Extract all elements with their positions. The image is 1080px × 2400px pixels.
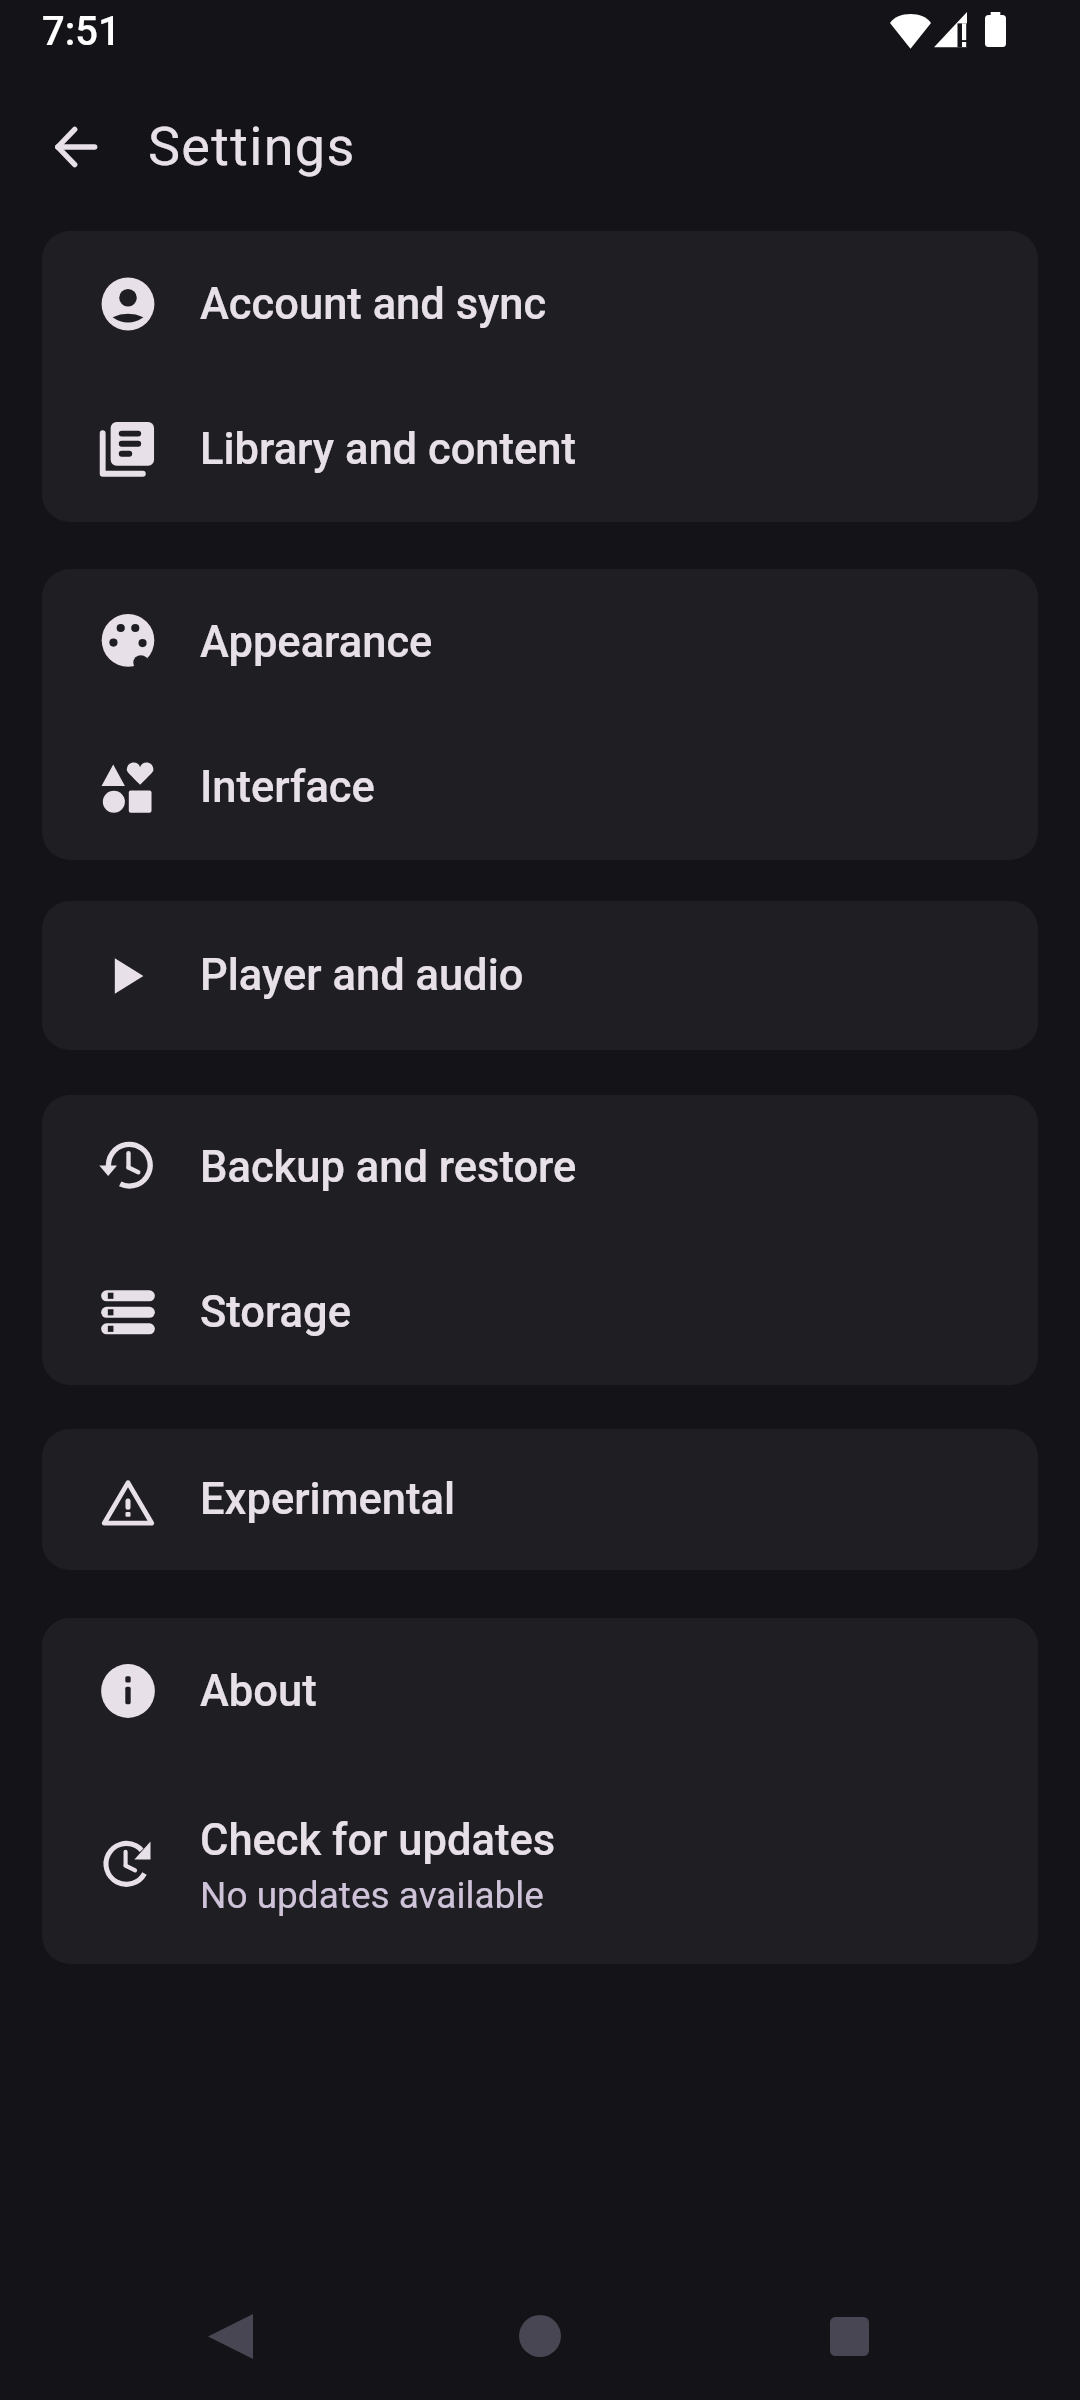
button[interactable]: Check for updates xyxy=(42,1764,1038,1964)
button[interactable]: Account and sync xyxy=(42,231,1038,377)
staticText: Backup and restore xyxy=(200,1142,577,1193)
staticText: Library and content xyxy=(200,424,577,475)
staticText: Appearance xyxy=(200,617,433,668)
staticText: 7:51 xyxy=(42,8,121,55)
staticText: Storage xyxy=(200,1287,352,1338)
button[interactable]: Player and audio xyxy=(42,901,1038,1050)
button[interactable]: Recents xyxy=(803,2290,895,2382)
button[interactable]: Back xyxy=(28,99,124,195)
button[interactable]: About xyxy=(42,1618,1038,1764)
button[interactable]: Back xyxy=(184,2290,276,2382)
staticText: Interface xyxy=(200,762,375,813)
staticText: Settings xyxy=(148,115,356,178)
staticText: Player and audio xyxy=(200,950,524,1001)
button[interactable]: Experimental xyxy=(42,1429,1038,1570)
staticText: Account and sync xyxy=(200,279,547,330)
button[interactable]: Library and content xyxy=(42,377,1038,522)
button[interactable]: Home xyxy=(494,2290,586,2382)
button[interactable]: Interface xyxy=(42,715,1038,860)
staticText: About xyxy=(200,1666,317,1717)
staticText: Experimental xyxy=(200,1474,456,1525)
staticText: No updates available xyxy=(200,1874,544,1917)
button[interactable]: Backup and restore xyxy=(42,1095,1038,1240)
button[interactable]: Storage xyxy=(42,1240,1038,1385)
staticText: Check for updates xyxy=(200,1815,556,1866)
button[interactable]: Appearance xyxy=(42,569,1038,715)
